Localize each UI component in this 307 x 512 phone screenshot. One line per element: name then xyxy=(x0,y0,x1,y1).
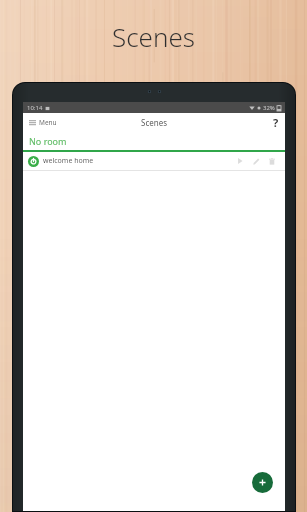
staticText: Scenes xyxy=(112,19,195,54)
button[interactable]: Add scene xyxy=(252,472,273,493)
staticText: 10:14 xyxy=(27,104,43,112)
staticText: No room xyxy=(29,135,67,147)
button[interactable]: Activate scene xyxy=(232,153,248,169)
button[interactable]: Help xyxy=(269,113,283,132)
button[interactable]: welcome home xyxy=(23,152,285,170)
staticText: welcome home xyxy=(43,156,232,166)
staticText: 32% xyxy=(263,104,275,112)
button[interactable]: Menu xyxy=(26,115,60,130)
button[interactable]: Edit scene xyxy=(248,153,264,169)
staticText: ? xyxy=(273,115,279,130)
staticText: Scenes xyxy=(141,117,168,128)
button[interactable]: Delete scene xyxy=(264,153,280,169)
staticText: Menu xyxy=(39,118,57,127)
button[interactable]: No room xyxy=(23,132,285,150)
